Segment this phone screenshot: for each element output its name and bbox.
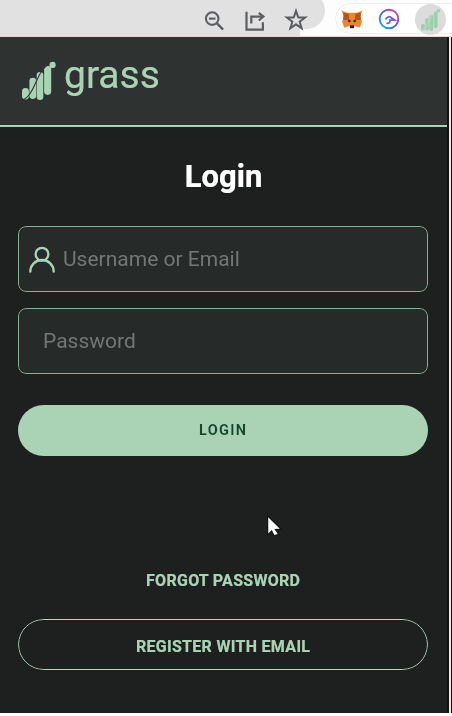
button[interactable]: Grass extension [415,4,446,35]
button[interactable]: Share [241,4,271,34]
staticText: LOGIN [199,422,248,439]
button[interactable]: MetaMask [341,10,363,29]
button[interactable]: Zoom out [199,4,229,34]
staticText: Login [0,158,447,194]
button[interactable]: Username or Email [18,226,428,292]
button[interactable]: REGISTER WITH EMAIL [18,619,428,670]
button[interactable]: FORGOT PASSWORD [146,571,301,590]
button[interactable]: Password [18,308,428,374]
staticText: FORGOT PASSWORD [146,571,301,590]
button[interactable]: Bookmark [280,4,310,34]
button[interactable]: LOGIN [18,405,428,456]
staticText: Username or Email [63,247,240,272]
staticText: grass [64,52,160,98]
staticText: Password [43,329,136,354]
staticText: REGISTER WITH EMAIL [136,637,311,656]
button[interactable]: Extension [377,7,401,31]
